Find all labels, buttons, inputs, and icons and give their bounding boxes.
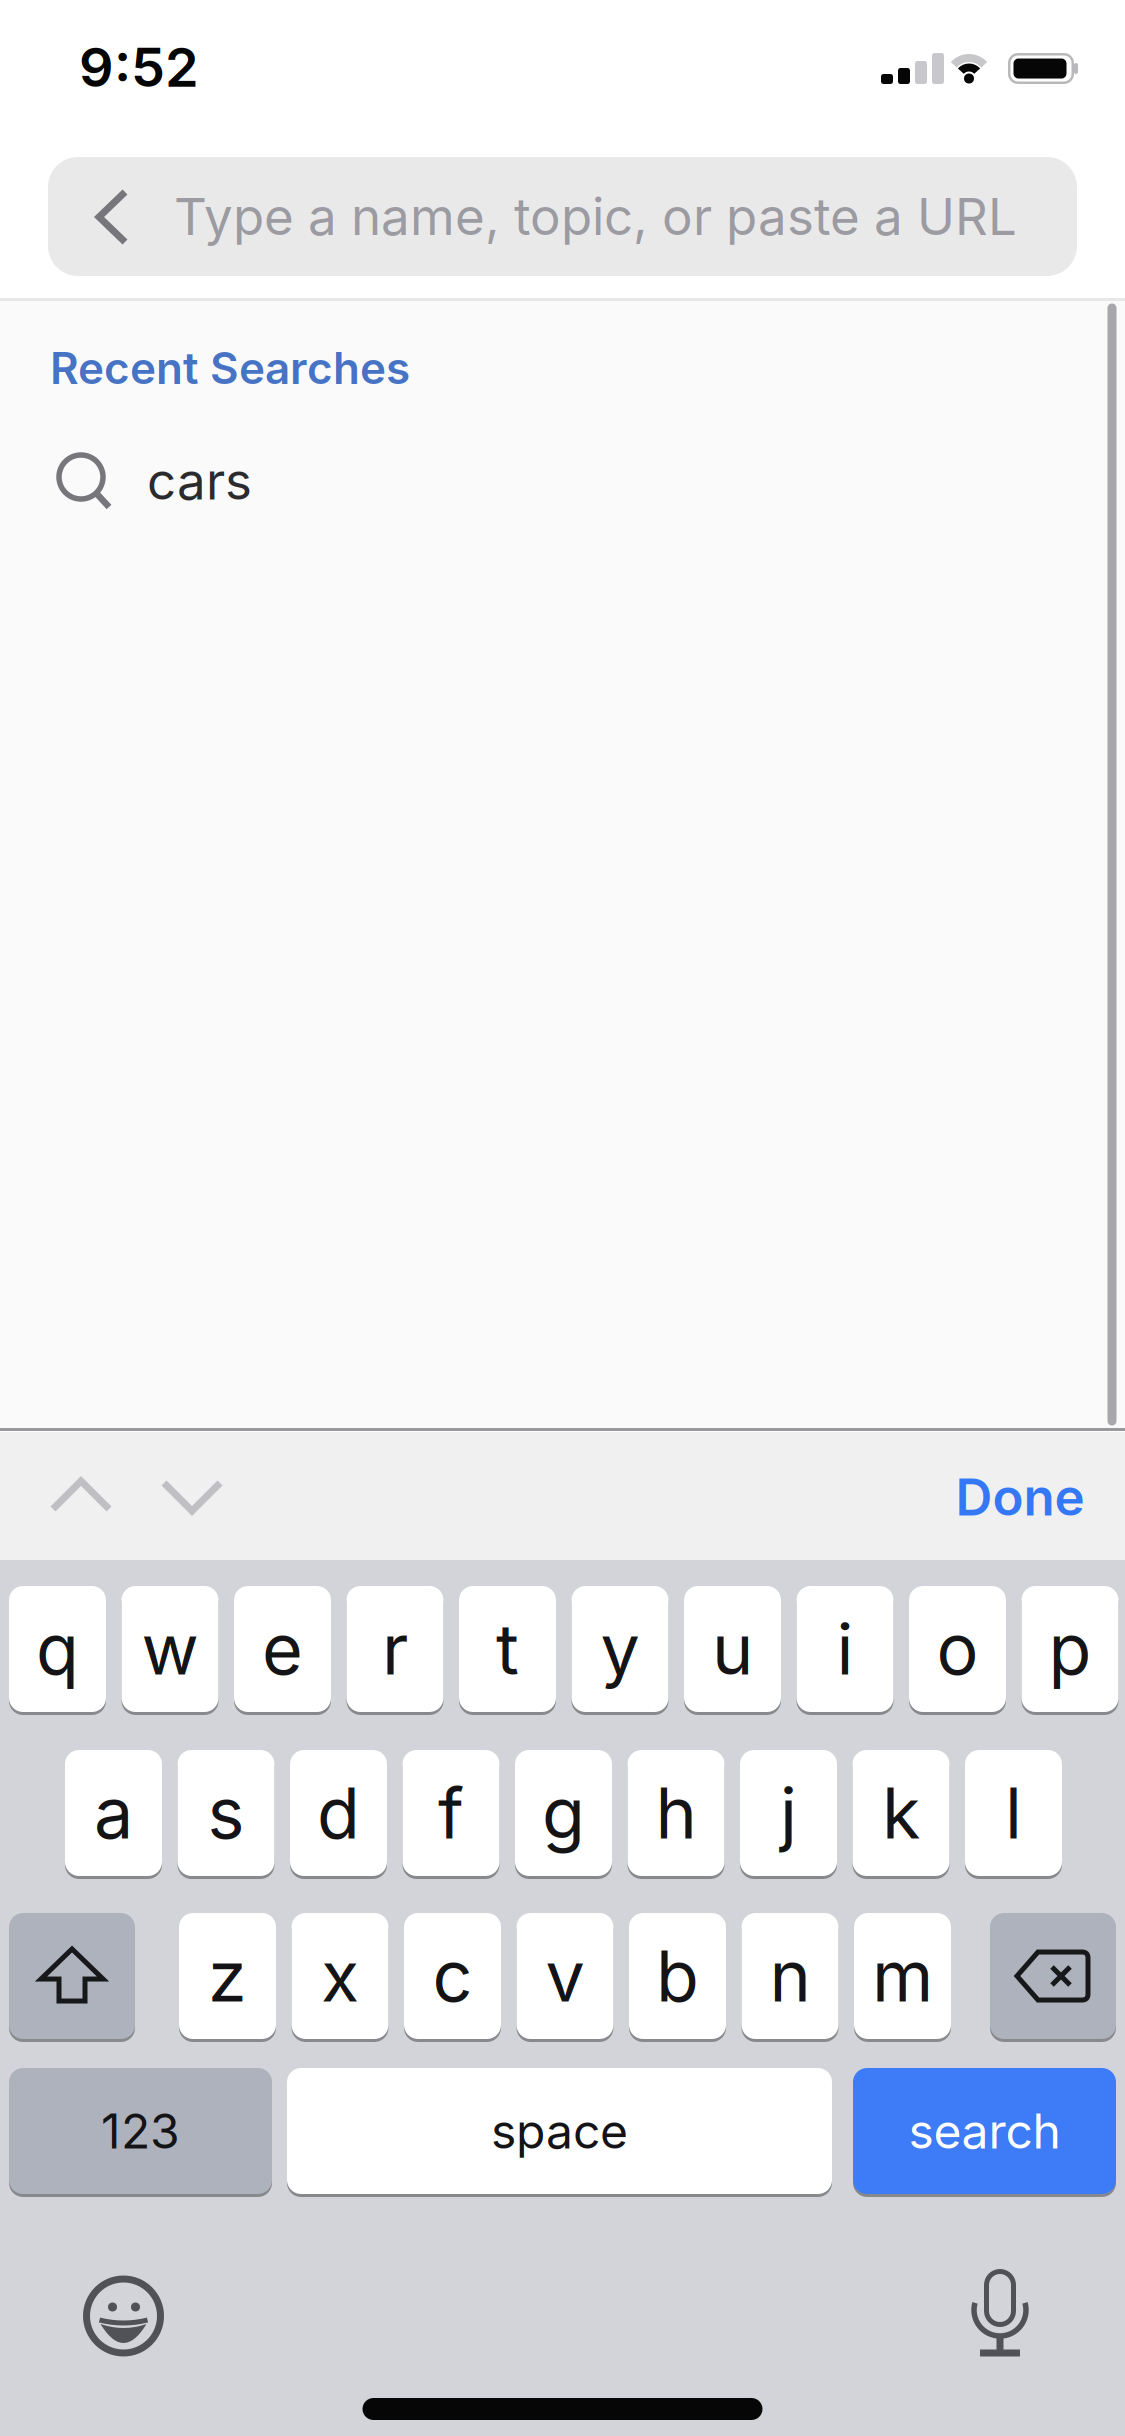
staticText: Recent Searches: [50, 341, 410, 395]
staticText: n: [769, 1934, 810, 2018]
button[interactable]: n: [741, 1911, 838, 2041]
button[interactable]: p: [1021, 1584, 1118, 1714]
staticText: Type a name, topic, or paste a URL: [174, 186, 1017, 247]
staticText: y: [600, 1607, 639, 1691]
button[interactable]: Emoji: [81, 2274, 165, 2358]
button[interactable]: s: [177, 1748, 274, 1878]
button[interactable]: i: [796, 1584, 893, 1714]
button[interactable]: t: [459, 1584, 556, 1714]
staticText: h: [655, 1771, 696, 1855]
staticText: g: [542, 1771, 585, 1855]
button[interactable]: j: [740, 1748, 837, 1878]
staticText: o: [936, 1607, 978, 1691]
staticText: r: [382, 1607, 408, 1691]
button[interactable]: Previous field: [49, 1475, 113, 1515]
staticText: u: [712, 1607, 753, 1691]
button[interactable]: g: [515, 1748, 612, 1878]
button[interactable]: c: [404, 1911, 501, 2041]
staticText: e: [262, 1607, 303, 1691]
staticText: w: [141, 1607, 198, 1691]
staticText: v: [545, 1934, 584, 2018]
button[interactable]: Next field: [160, 1477, 224, 1517]
button[interactable]: Done: [955, 1466, 1084, 1528]
button[interactable]: d: [290, 1748, 387, 1878]
staticText: x: [321, 1934, 359, 2018]
staticText: a: [94, 1771, 133, 1855]
staticText: k: [882, 1771, 920, 1855]
button[interactable]: k: [852, 1748, 949, 1878]
staticText: i: [836, 1607, 853, 1691]
button[interactable]: cars: [56, 426, 1125, 536]
button[interactable]: r: [346, 1584, 443, 1714]
button[interactable]: h: [627, 1748, 724, 1878]
button[interactable]: l: [965, 1748, 1062, 1878]
button[interactable]: f: [402, 1748, 499, 1878]
button[interactable]: y: [571, 1584, 668, 1714]
staticText: q: [36, 1607, 79, 1691]
staticText: c: [432, 1934, 472, 2018]
staticText: d: [317, 1771, 360, 1855]
button[interactable]: 123: [9, 2066, 272, 2196]
staticText: cars: [147, 450, 252, 512]
button[interactable]: b: [629, 1911, 726, 2041]
staticText: p: [1048, 1607, 1091, 1691]
button[interactable]: o: [909, 1584, 1006, 1714]
staticText: z: [208, 1934, 247, 2018]
button[interactable]: Back: [95, 188, 129, 246]
staticText: l: [1005, 1771, 1022, 1855]
staticText: search: [908, 2102, 1060, 2160]
button[interactable]: search: [853, 2066, 1116, 2196]
staticText: m: [872, 1934, 933, 2018]
button[interactable]: w: [121, 1584, 218, 1714]
button[interactable]: Shift: [9, 1911, 135, 2041]
staticText: t: [496, 1607, 519, 1691]
staticText: 9:52: [79, 34, 199, 100]
staticText: b: [656, 1934, 699, 2018]
button[interactable]: q: [9, 1584, 106, 1714]
button[interactable]: space: [287, 2066, 832, 2196]
button[interactable]: m: [854, 1911, 951, 2041]
button[interactable]: e: [234, 1584, 331, 1714]
button[interactable]: Delete: [990, 1911, 1116, 2041]
button[interactable]: z: [179, 1911, 276, 2041]
button[interactable]: a: [65, 1748, 162, 1878]
button[interactable]: Dictate: [972, 2269, 1028, 2357]
button[interactable]: v: [516, 1911, 613, 2041]
staticText: f: [438, 1771, 464, 1855]
button[interactable]: Search field: [174, 157, 1077, 276]
staticText: s: [207, 1771, 244, 1855]
staticText: 123: [101, 2102, 180, 2160]
staticText: j: [780, 1771, 797, 1855]
button[interactable]: x: [291, 1911, 388, 2041]
button[interactable]: u: [684, 1584, 781, 1714]
staticText: space: [491, 2102, 628, 2160]
staticText: Done: [955, 1466, 1084, 1528]
